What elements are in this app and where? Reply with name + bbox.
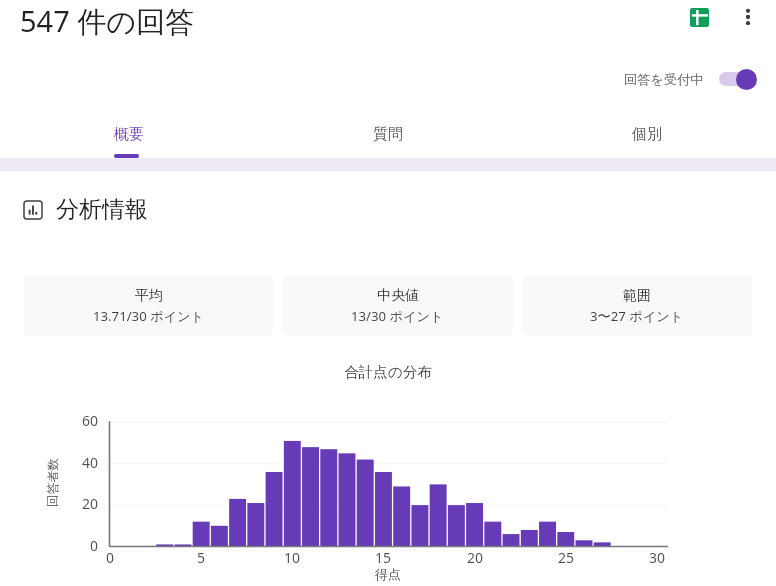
staticText: 20: [82, 494, 99, 510]
button[interactable]: 概要: [0, 110, 258, 158]
staticText: 0: [90, 536, 99, 552]
button[interactable]: 回答を受付中: [620, 68, 762, 90]
staticText: 回答を受付中: [624, 71, 704, 88]
button[interactable]: 範囲: [522, 275, 752, 336]
button[interactable]: スプレッドシートで表示: [679, 0, 719, 37]
staticText: 質問: [373, 125, 403, 144]
staticText: 25: [558, 548, 575, 564]
staticText: 15: [375, 548, 392, 564]
staticText: 5: [197, 548, 206, 564]
button[interactable]: 質問: [258, 110, 517, 158]
button[interactable]: 分析情報: [22, 193, 150, 226]
staticText: 30: [649, 548, 666, 564]
staticText: 13.71/30 ポイント: [93, 307, 205, 325]
staticText: 547 件の回答: [20, 1, 194, 41]
staticText: 20: [467, 548, 484, 564]
staticText: 得点: [0, 566, 776, 582]
button[interactable]: その他の操作: [728, 0, 768, 37]
staticText: 40: [82, 453, 99, 469]
staticText: 回答者数: [45, 458, 60, 507]
staticText: 中央値: [377, 287, 419, 305]
staticText: 60: [82, 411, 99, 427]
staticText: 合計点の分布: [0, 363, 776, 381]
staticText: 個別: [632, 125, 662, 144]
staticText: 3〜27 ポイント: [590, 307, 684, 325]
staticText: 10: [284, 548, 301, 564]
button[interactable]: 個別: [517, 110, 776, 158]
button[interactable]: 中央値: [282, 275, 513, 336]
staticText: 範囲: [623, 287, 651, 305]
staticText: 概要: [114, 125, 144, 144]
staticText: 平均: [135, 287, 163, 305]
staticText: 0: [106, 548, 115, 564]
button[interactable]: 平均: [24, 275, 273, 336]
staticText: 13/30 ポイント: [351, 307, 444, 325]
staticText: 分析情報: [56, 195, 148, 224]
